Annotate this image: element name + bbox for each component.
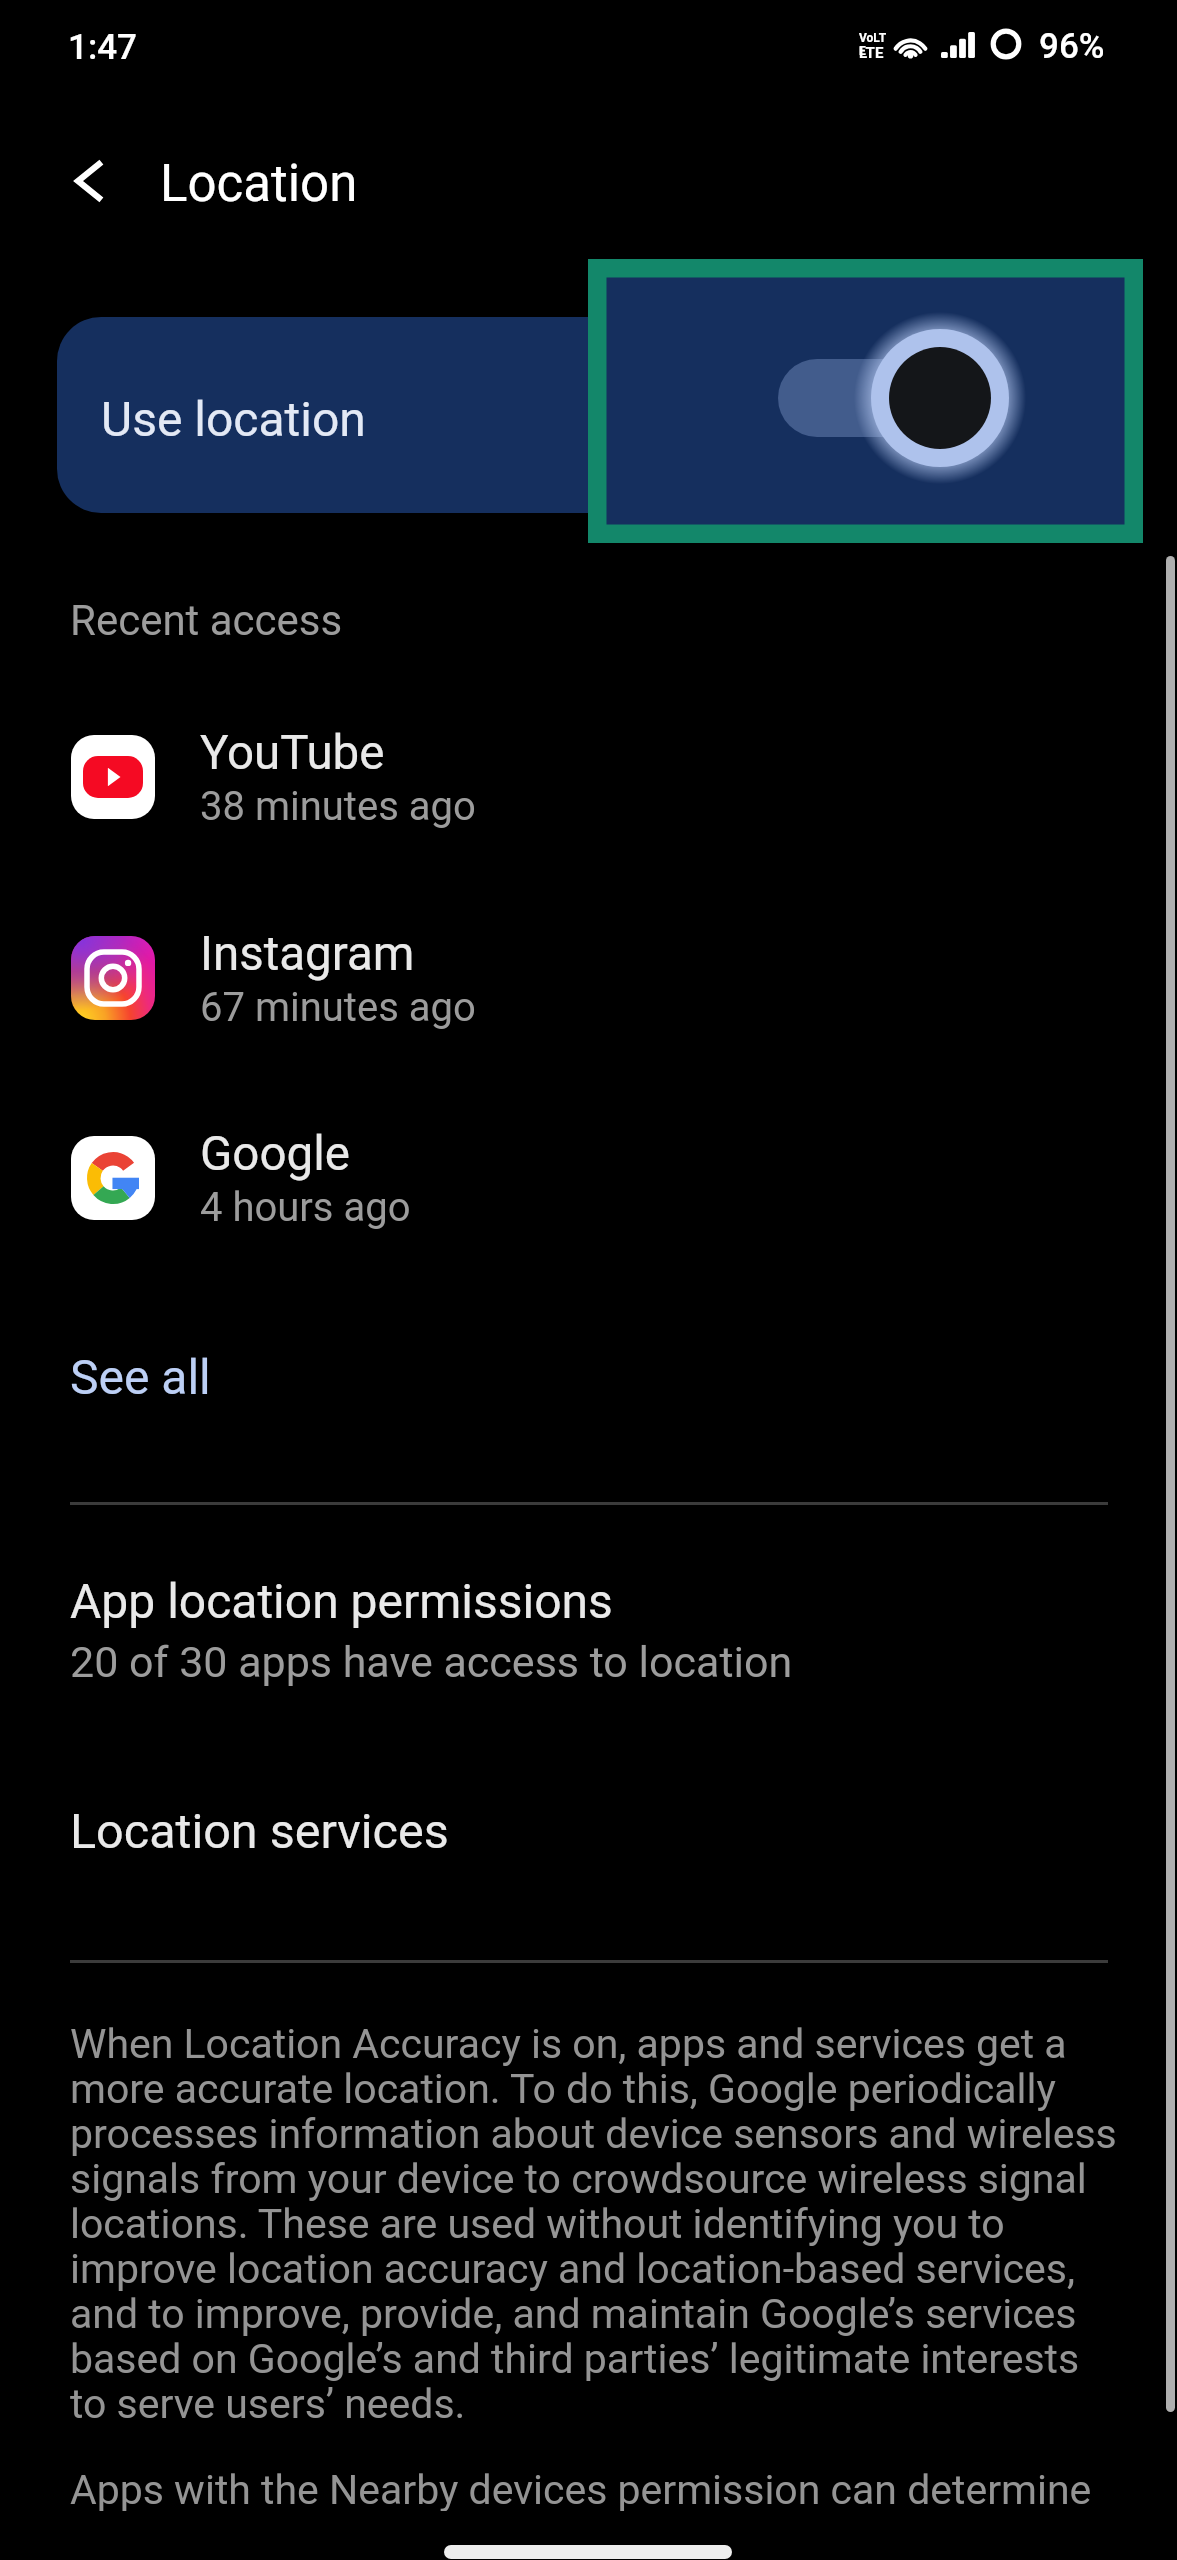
- button[interactable]: Instagram: [0, 914, 1177, 1040]
- staticText: Location: [160, 154, 358, 214]
- staticText: 1:47: [68, 27, 137, 68]
- staticText: 38 minutes ago: [200, 783, 476, 830]
- staticText: See all: [70, 1349, 211, 1405]
- button[interactable]: See all: [60, 1345, 225, 1437]
- button[interactable]: Use location: [57, 317, 1120, 513]
- button[interactable]: Google: [0, 1114, 1177, 1240]
- button[interactable]: YouTube: [0, 713, 1177, 839]
- staticText: Location services: [70, 1803, 449, 1860]
- staticText: Instagram: [200, 926, 415, 982]
- staticText: 96%: [1039, 26, 1105, 67]
- button[interactable]: Use location toggle: [738, 303, 1068, 493]
- staticText: LTE: [859, 44, 884, 62]
- staticText: VoLTE: [859, 31, 888, 57]
- staticText: YouTube: [200, 725, 385, 781]
- button[interactable]: App location permissions: [0, 1540, 1177, 1720]
- staticText: App location permissions: [70, 1573, 613, 1629]
- button[interactable]: Location services: [0, 1788, 1177, 1906]
- staticText: 20 of 30 apps have access to location: [70, 1637, 793, 1687]
- staticText: Google: [200, 1126, 350, 1182]
- staticText: 67 minutes ago: [200, 984, 476, 1031]
- staticText: Recent access: [70, 596, 343, 645]
- staticText: 4 hours ago: [200, 1184, 411, 1231]
- staticText: When Location Accuracy is on, apps and s…: [70, 2023, 1122, 2428]
- button[interactable]: Back: [39, 132, 137, 230]
- staticText: Use location: [101, 391, 366, 447]
- staticText: Apps with the Nearby devices permission …: [70, 2469, 1122, 2559]
